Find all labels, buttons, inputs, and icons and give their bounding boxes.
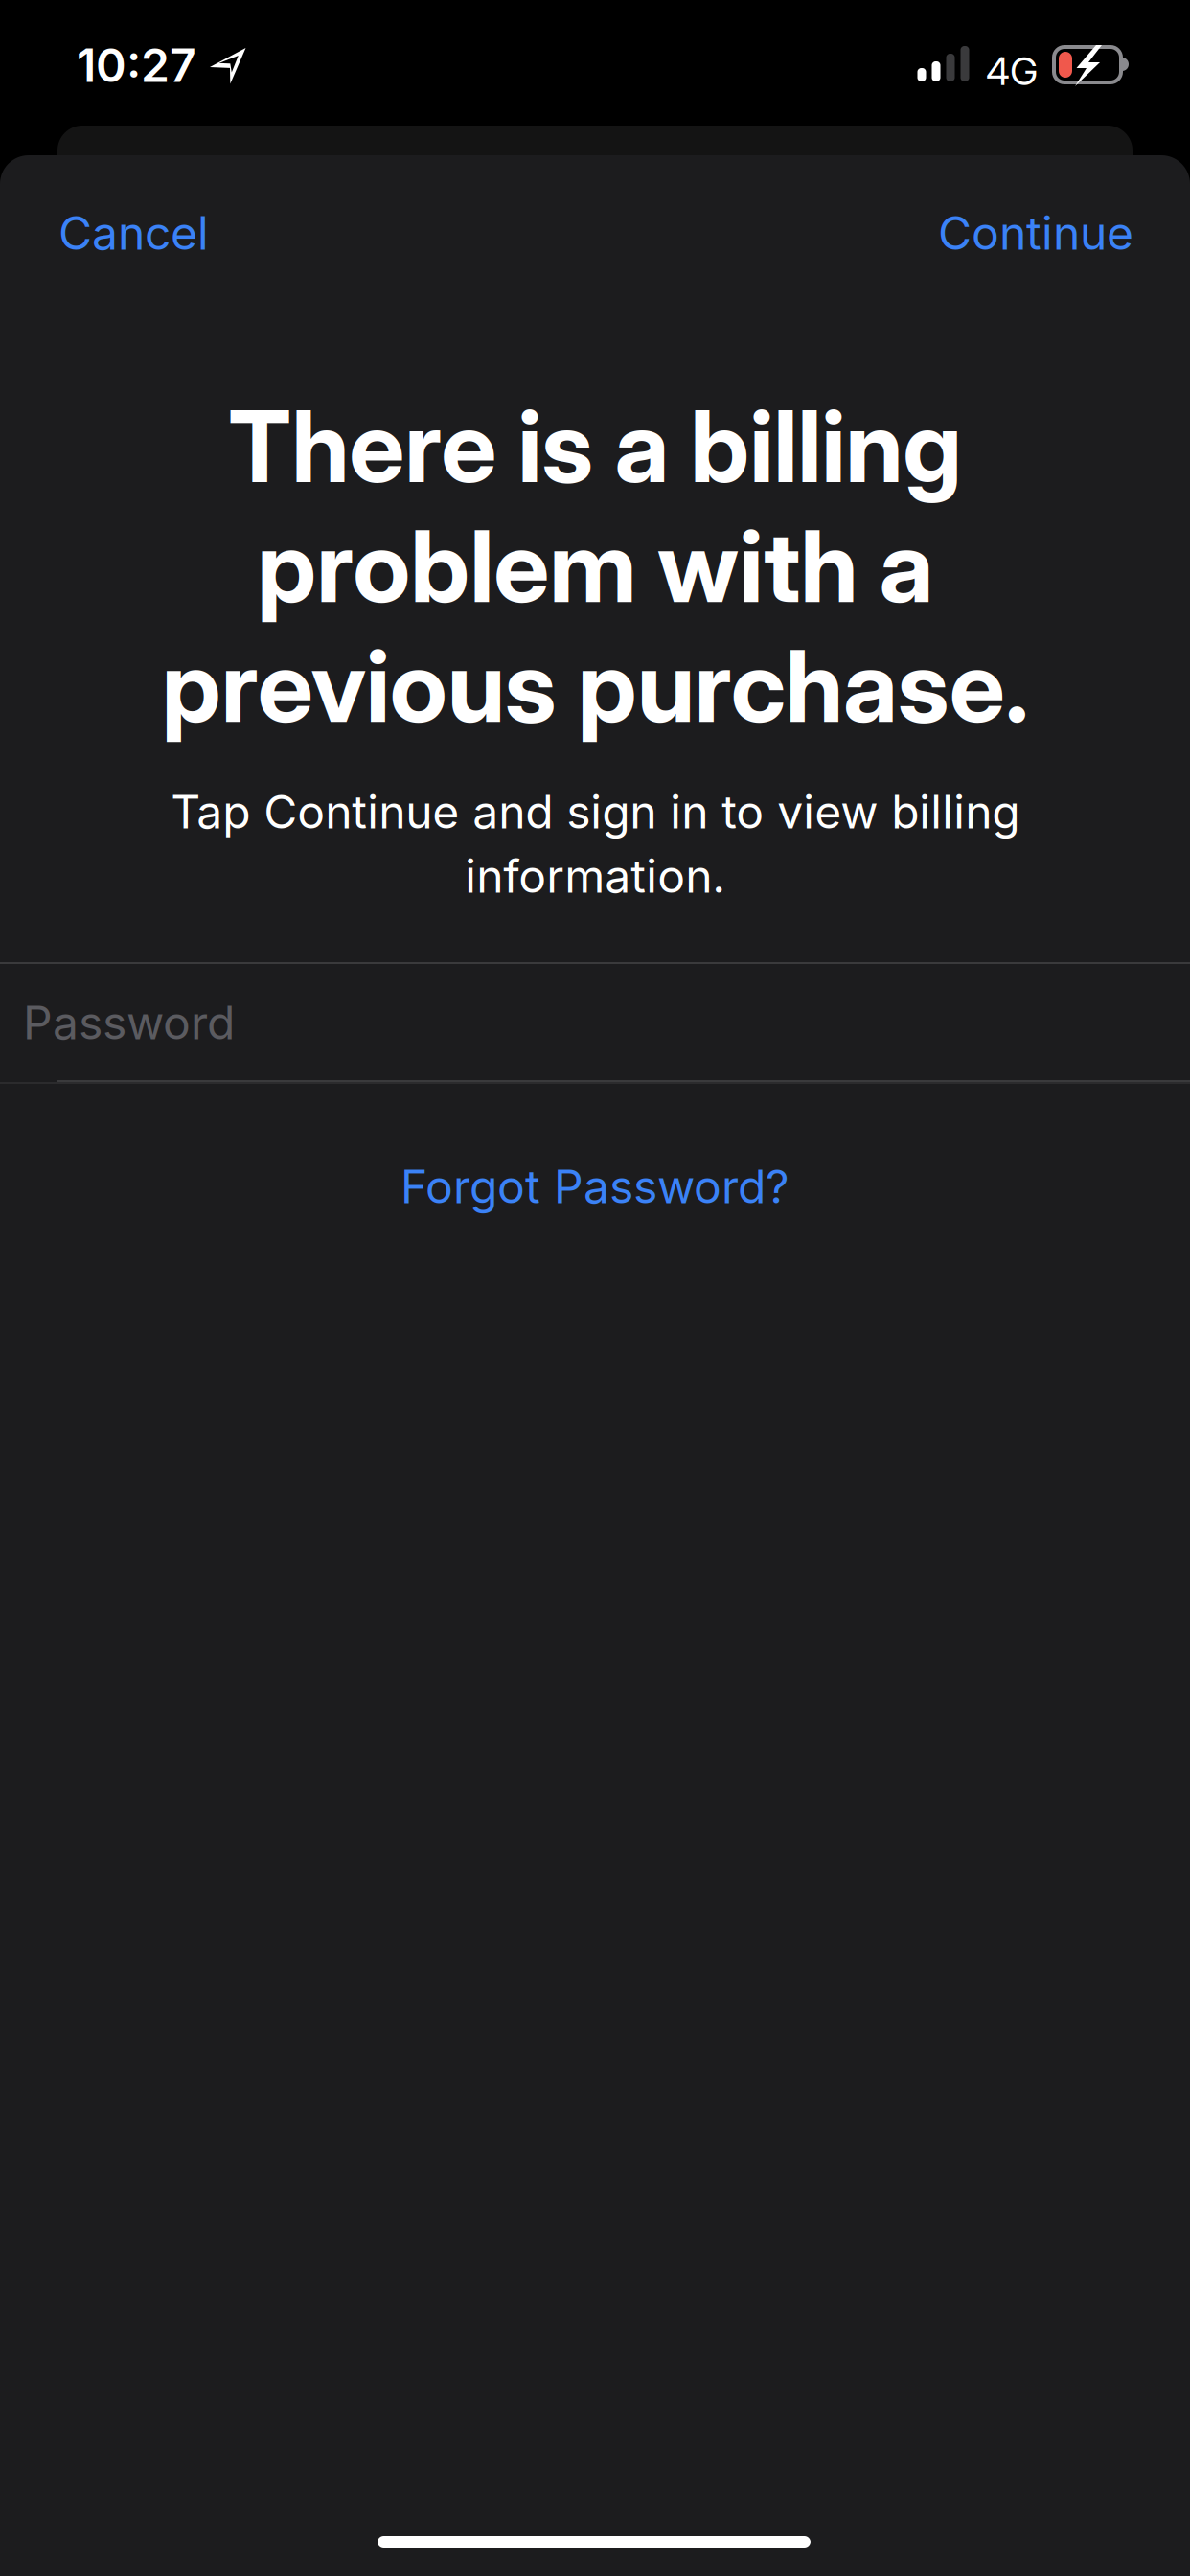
- staticText: Forgot Password?: [400, 1159, 790, 1214]
- button[interactable]: Cancel: [58, 180, 250, 286]
- staticText: Continue: [938, 205, 1133, 261]
- button[interactable]: Forgot Password?: [0, 1129, 1190, 1244]
- button[interactable]: Password: [0, 964, 1190, 1082]
- staticText: There is a billing problem with a previo…: [161, 386, 1029, 746]
- button[interactable]: Continue: [884, 180, 1133, 286]
- staticText: 10:27: [77, 37, 196, 93]
- staticText: Password: [23, 995, 235, 1050]
- staticText: Cancel: [58, 205, 209, 261]
- staticText: 4G: [986, 48, 1038, 94]
- staticText: Tap Continue and sign in to view billing…: [171, 784, 1019, 904]
